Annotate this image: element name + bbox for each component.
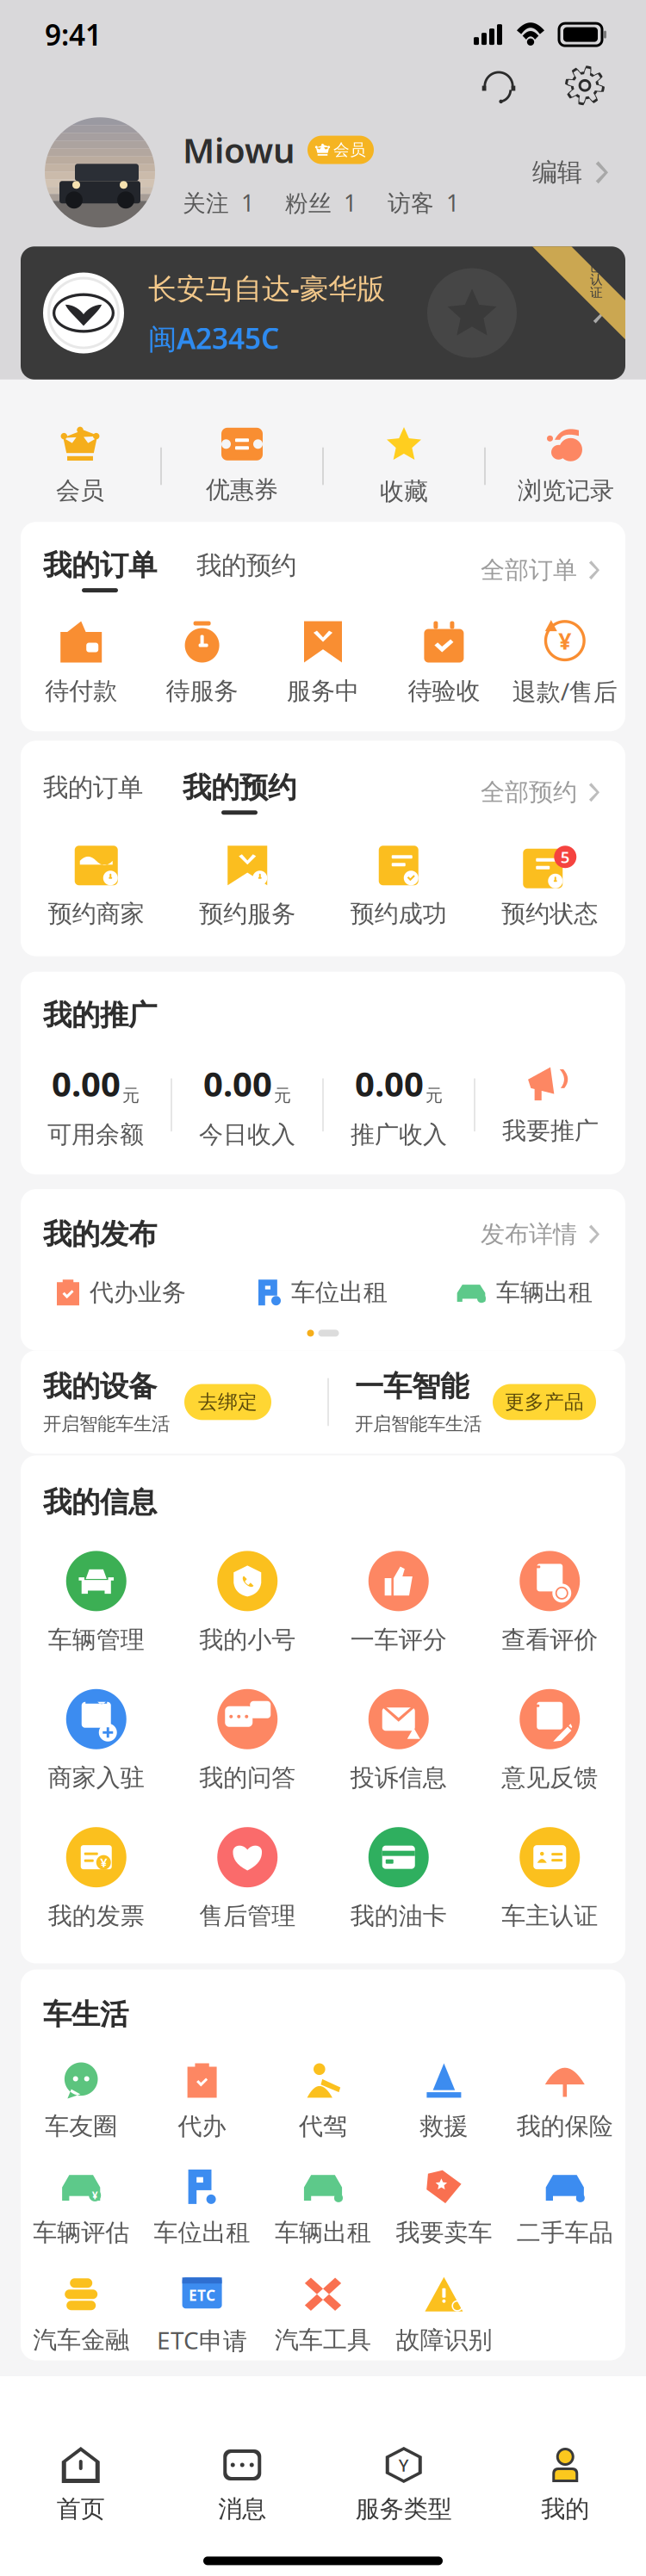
- button[interactable]: ¥: [21, 2168, 142, 2247]
- button[interactable]: 代办: [142, 2062, 263, 2141]
- button[interactable]: 发布详情: [481, 1219, 599, 1249]
- button[interactable]: 我的订单: [43, 548, 157, 592]
- button[interactable]: 待服务: [142, 621, 263, 706]
- button[interactable]: 投诉信息: [323, 1689, 474, 1793]
- button[interactable]: 车辆出租: [263, 2168, 383, 2247]
- staticText: 投诉信息: [350, 1763, 447, 1793]
- staticText: 预约服务: [199, 899, 296, 929]
- button[interactable]: ¥: [504, 620, 625, 707]
- staticText: 5: [561, 846, 570, 868]
- button[interactable]: 编辑: [532, 157, 608, 188]
- button[interactable]: 代办业务: [21, 1278, 222, 1307]
- button[interactable]: 全部订单: [481, 555, 599, 585]
- button[interactable]: 二手车品: [504, 2168, 625, 2247]
- button[interactable]: 服务中: [263, 621, 383, 706]
- button[interactable]: 救援: [383, 2062, 504, 2141]
- button[interactable]: 车辆出租: [424, 1278, 625, 1307]
- button[interactable]: 优惠券: [162, 428, 322, 505]
- button[interactable]: 我的小号: [172, 1551, 323, 1655]
- button[interactable]: 车位出租: [142, 2168, 263, 2247]
- button[interactable]: 商家入驻: [21, 1689, 172, 1793]
- staticText: 意见反馈: [501, 1763, 598, 1793]
- button[interactable]: 设置: [565, 66, 605, 105]
- staticText: 我的预约: [183, 770, 296, 805]
- button[interactable]: 我要推广: [475, 1064, 625, 1146]
- staticText: 我的小号: [199, 1625, 296, 1655]
- button[interactable]: 我的预约: [196, 550, 296, 590]
- button[interactable]: 待验收: [383, 621, 504, 706]
- staticText: 我的发票: [48, 1901, 145, 1931]
- staticText: 粉丝 1: [285, 187, 357, 218]
- button[interactable]: 查看评价: [474, 1551, 625, 1655]
- button[interactable]: 待付款: [21, 621, 142, 706]
- staticText: 0.00: [52, 1060, 121, 1106]
- button[interactable]: 会员: [0, 427, 160, 506]
- staticText: 开启智能车生活: [43, 1413, 170, 1435]
- button[interactable]: 我的预约: [183, 770, 296, 815]
- button[interactable]: 一车评分: [323, 1551, 474, 1655]
- staticText: ¥: [558, 625, 571, 656]
- button[interactable]: 5: [474, 846, 625, 929]
- staticText: 车辆评估: [33, 2218, 129, 2247]
- staticText: 汽车工具: [275, 2325, 371, 2355]
- staticText: 元: [425, 1085, 443, 1106]
- staticText: 开启智能车生活: [355, 1413, 481, 1435]
- staticText: 我的订单: [43, 772, 143, 803]
- staticText: 今日收入: [199, 1120, 295, 1149]
- button[interactable]: 售后管理: [172, 1827, 323, 1931]
- button[interactable]: 车友圈: [21, 2062, 142, 2141]
- staticText: 待服务: [166, 676, 238, 706]
- staticText: Y: [399, 2453, 409, 2476]
- button[interactable]: 预约商家: [21, 846, 172, 929]
- button[interactable]: 预约服务: [172, 846, 323, 929]
- button[interactable]: 一车智能: [329, 1369, 613, 1435]
- staticText: 认: [590, 272, 603, 287]
- staticText: 推广收入: [351, 1120, 447, 1149]
- staticText: 我的订单: [43, 548, 157, 583]
- button[interactable]: 汽车工具: [263, 2275, 383, 2355]
- staticText: 会员: [56, 476, 104, 506]
- button[interactable]: 消息: [161, 2447, 323, 2524]
- staticText: 一车评分: [350, 1625, 447, 1655]
- button[interactable]: 我的保险: [504, 2062, 625, 2141]
- button[interactable]: 车位出租: [222, 1278, 424, 1307]
- button[interactable]: 客服: [479, 67, 519, 104]
- staticText: ¥: [92, 2188, 98, 2202]
- button[interactable]: 我要卖车: [383, 2168, 504, 2247]
- button[interactable]: 代驾: [263, 2062, 383, 2141]
- button[interactable]: 收藏: [324, 426, 484, 506]
- button[interactable]: Y: [323, 2447, 484, 2524]
- staticText: 代驾: [299, 2112, 347, 2141]
- button[interactable]: ¥: [21, 1827, 172, 1931]
- button[interactable]: 故障识别: [383, 2275, 504, 2355]
- staticText: 车辆管理: [48, 1625, 145, 1655]
- staticText: 二手车品: [517, 2218, 613, 2247]
- staticText: 汽车金融: [33, 2325, 129, 2355]
- staticText: 车位出租: [154, 2218, 250, 2247]
- button[interactable]: 意见反馈: [474, 1689, 625, 1793]
- button[interactable]: 我的订单: [43, 772, 143, 813]
- staticText: 车辆出租: [275, 2218, 371, 2247]
- staticText: 更多产品: [505, 1390, 584, 1414]
- button[interactable]: 我的设备: [43, 1369, 327, 1435]
- button[interactable]: 汽车金融: [21, 2275, 142, 2355]
- button[interactable]: 浏览记录: [486, 427, 646, 506]
- staticText: 我的保险: [517, 2112, 613, 2141]
- staticText: 证: [590, 285, 603, 300]
- button[interactable]: 我的问答: [172, 1689, 323, 1793]
- staticText: 长安马自达-豪华版: [148, 269, 385, 307]
- button[interactable]: 预约成功: [323, 846, 474, 929]
- staticText: 代办: [178, 2112, 226, 2141]
- button[interactable]: ETC: [142, 2274, 263, 2356]
- button[interactable]: 全部预约: [481, 778, 599, 807]
- staticText: 预约商家: [48, 899, 145, 929]
- button[interactable]: 我的: [484, 2447, 646, 2524]
- button[interactable]: 首页: [0, 2447, 161, 2524]
- staticText: 全部预约: [481, 778, 577, 807]
- button[interactable]: 车辆管理: [21, 1551, 172, 1655]
- staticText: 我的发布: [43, 1217, 157, 1252]
- staticText: 售后管理: [199, 1901, 296, 1931]
- button[interactable]: 车主认证: [474, 1827, 625, 1931]
- button[interactable]: 长安马自达-豪华版: [21, 246, 625, 380]
- button[interactable]: 我的油卡: [323, 1827, 474, 1931]
